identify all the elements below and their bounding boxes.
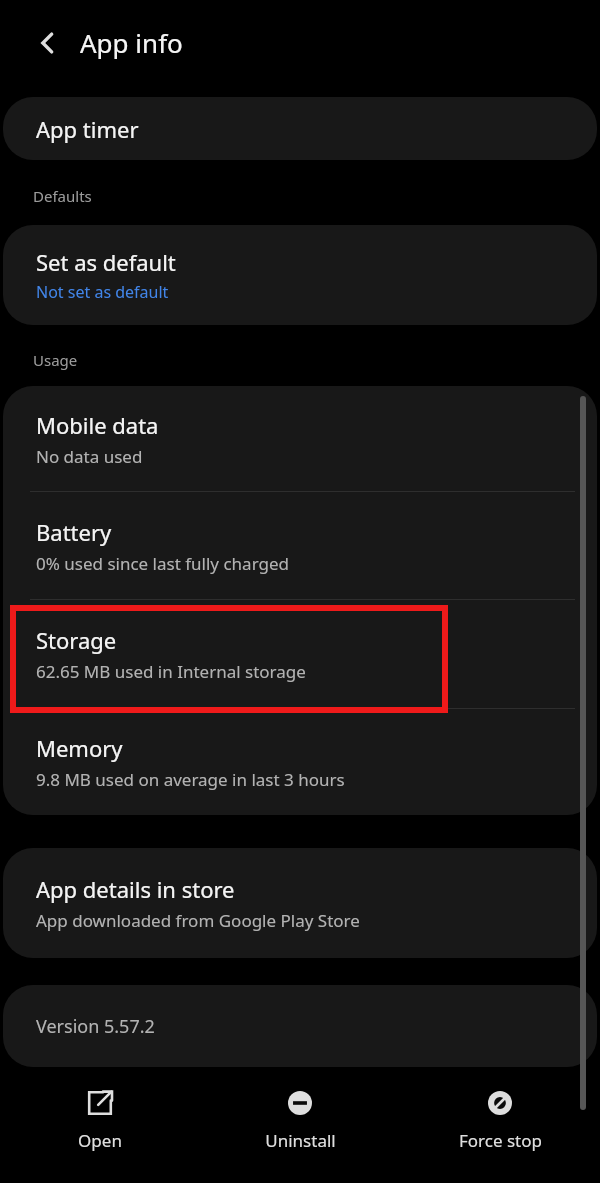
button[interactable]: Force stop xyxy=(400,1088,600,1152)
staticText: App info xyxy=(80,25,183,60)
staticText: Memory xyxy=(36,733,123,763)
button[interactable]: Memory xyxy=(3,709,597,815)
staticText: Battery xyxy=(36,517,112,547)
staticText: App downloaded from Google Play Store xyxy=(36,909,360,932)
button[interactable]: Uninstall xyxy=(200,1088,400,1152)
button[interactable]: App details in store xyxy=(3,848,597,958)
button[interactable]: Battery xyxy=(3,492,597,599)
staticText: 0% used since last fully charged xyxy=(36,552,289,575)
button[interactable]: Back xyxy=(20,16,74,70)
staticText: Storage xyxy=(36,625,117,655)
staticText: Force stop xyxy=(459,1129,542,1152)
button[interactable]: Storage xyxy=(3,600,597,708)
staticText: Uninstall xyxy=(265,1129,336,1152)
staticText: App details in store xyxy=(36,874,235,904)
staticText: Defaults xyxy=(33,186,92,206)
staticText: Usage xyxy=(33,350,78,370)
staticText: Set as default xyxy=(36,247,176,277)
staticText: 62.65 MB used in Internal storage xyxy=(36,660,306,683)
button[interactable]: App timer xyxy=(3,97,597,160)
staticText: Not set as default xyxy=(36,281,169,303)
staticText: Open xyxy=(78,1129,122,1152)
staticText: No data used xyxy=(36,445,143,468)
button[interactable]: Set as default xyxy=(3,225,597,325)
staticText: Version 5.57.2 xyxy=(36,1014,155,1039)
staticText: 9.8 MB used on average in last 3 hours xyxy=(36,768,345,791)
staticText: Mobile data xyxy=(36,410,159,440)
button[interactable]: Mobile data xyxy=(3,386,597,492)
staticText: App timer xyxy=(36,114,139,144)
button[interactable]: Open xyxy=(0,1088,200,1152)
